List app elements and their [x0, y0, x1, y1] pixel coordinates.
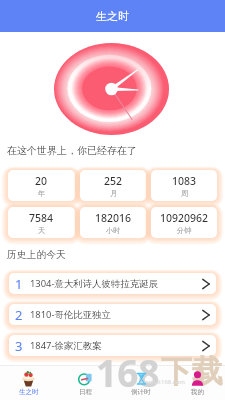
staticText: 1	[15, 275, 23, 293]
staticText: 2	[15, 306, 23, 324]
staticText: 生之时	[19, 388, 39, 396]
staticText: 历史上的今天	[7, 249, 66, 261]
staticText: 168	[96, 347, 160, 397]
button[interactable]: 252	[80, 170, 146, 201]
staticText: 1083	[172, 174, 197, 188]
staticText: 10920962	[160, 211, 209, 225]
staticText: 分钟	[177, 226, 192, 235]
button[interactable]: 倒计时	[113, 366, 169, 400]
staticText: 小时	[106, 226, 121, 235]
staticText: 在这个世界上，你已经存在了	[7, 144, 137, 157]
staticText: 周	[181, 189, 189, 198]
button[interactable]: 7584	[8, 207, 75, 238]
staticText: 3	[15, 337, 23, 355]
staticText: 182016	[95, 211, 132, 225]
button[interactable]: 20	[8, 170, 75, 201]
staticText: 1847-徐家汇教案	[30, 339, 102, 352]
button[interactable]: 日程	[57, 366, 113, 400]
staticText: 1304-意大利诗人彼特拉克诞辰	[30, 277, 158, 290]
button[interactable]: 3	[9, 335, 216, 356]
staticText: 年	[38, 189, 46, 198]
staticText: down.it168.com	[140, 378, 185, 386]
button[interactable]: 182016	[80, 207, 146, 238]
button[interactable]: 1083	[151, 170, 217, 201]
staticText: 252	[104, 174, 123, 188]
staticText: 1810-哥伦比亚独立	[30, 308, 111, 321]
staticText: 天	[38, 226, 46, 235]
staticText: 7584	[29, 211, 54, 225]
staticText: 日程	[79, 388, 92, 396]
staticText: 20	[35, 174, 48, 188]
button[interactable]: 1	[9, 273, 216, 294]
button[interactable]: 2	[9, 304, 216, 325]
button[interactable]: 10920962	[151, 207, 217, 238]
staticText: 生之时	[96, 9, 129, 23]
staticText: 下载	[161, 352, 223, 391]
staticText: 倒计时	[131, 388, 151, 396]
button[interactable]: 我的	[169, 366, 225, 400]
button[interactable]: 生之时	[0, 0, 225, 32]
staticText: 月	[110, 189, 118, 198]
button[interactable]: 生之时	[0, 366, 57, 400]
staticText: 我的	[191, 388, 204, 396]
